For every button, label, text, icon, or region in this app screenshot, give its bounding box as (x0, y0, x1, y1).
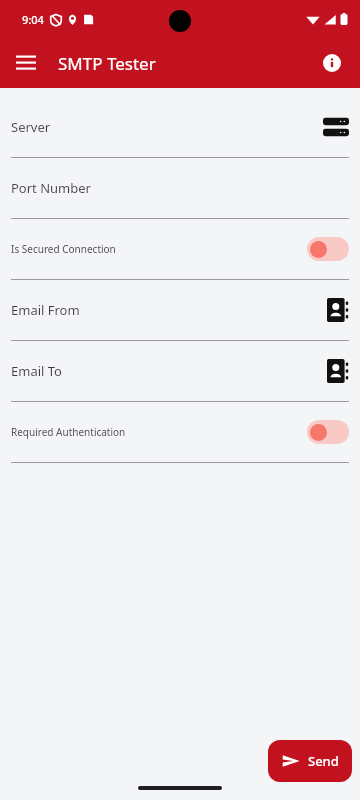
button[interactable]: Port Number (0, 158, 360, 219)
staticText: Server (11, 118, 51, 136)
button[interactable]: Send (268, 740, 352, 782)
button[interactable]: Email From (0, 280, 360, 341)
button[interactable]: Open navigation menu (6, 43, 46, 83)
staticText: 9:04 (22, 12, 44, 27)
staticText: Email From (11, 301, 80, 319)
staticText: Email To (11, 362, 62, 380)
button[interactable]: Required Authentication (0, 402, 360, 463)
staticText: SMTP Tester (58, 52, 156, 75)
staticText: Send (308, 752, 339, 770)
button[interactable]: Is Secured Connection (0, 219, 360, 280)
staticText: Required Authentication (11, 425, 126, 439)
staticText: Is Secured Connection (11, 242, 116, 256)
button[interactable]: Server (0, 97, 360, 158)
button[interactable]: Info (314, 45, 350, 81)
staticText: Port Number (11, 179, 91, 197)
other: Pick server (323, 116, 349, 138)
other: Pick contact (327, 359, 349, 383)
button[interactable]: Email To (0, 341, 360, 402)
other: Pick contact (327, 298, 349, 322)
